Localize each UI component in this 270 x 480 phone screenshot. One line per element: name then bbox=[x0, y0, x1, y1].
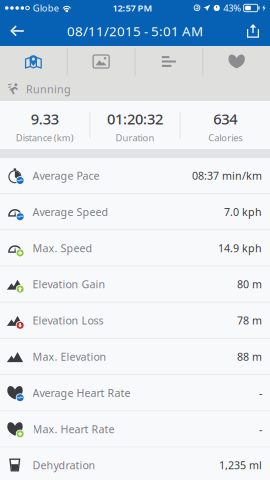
staticText: Average Speed bbox=[32, 205, 108, 219]
button[interactable]: Heart rate bbox=[203, 46, 270, 77]
staticText: Duration bbox=[115, 131, 154, 144]
staticText: 1,235 ml bbox=[219, 458, 262, 472]
staticText: Dehydration bbox=[32, 458, 95, 472]
button[interactable]: Average Heart Rate bbox=[0, 375, 270, 411]
button[interactable]: Back bbox=[0, 16, 34, 46]
button[interactable]: Photos bbox=[68, 46, 135, 77]
staticText: Elevation Loss bbox=[32, 313, 103, 327]
staticText: 08:37 min/km bbox=[192, 168, 262, 183]
staticText: - bbox=[259, 422, 262, 436]
button[interactable]: Max. Speed bbox=[0, 230, 270, 267]
staticText: 14.9 kph bbox=[218, 241, 262, 255]
staticText: 12:57 PM bbox=[112, 2, 152, 14]
staticText: Max. Speed bbox=[32, 241, 92, 255]
button[interactable]: Splits bbox=[135, 46, 202, 77]
button[interactable]: Average Speed bbox=[0, 194, 270, 230]
button[interactable]: Dehydration bbox=[0, 448, 270, 480]
staticText: 78 m bbox=[237, 313, 262, 327]
button[interactable]: Average Pace bbox=[0, 158, 270, 194]
staticText: Average Heart Rate bbox=[32, 386, 130, 400]
staticText: Running bbox=[26, 82, 71, 96]
button[interactable]: Elevation Loss bbox=[0, 303, 270, 339]
staticText: 7.0 kph bbox=[224, 205, 262, 219]
staticText: 634 bbox=[213, 109, 237, 129]
button[interactable]: Share bbox=[236, 16, 270, 46]
staticText: 43% bbox=[223, 2, 241, 14]
button[interactable]: Max. Elevation bbox=[0, 339, 270, 375]
staticText: 08/11/2015 - 5:01 AM bbox=[67, 22, 203, 40]
staticText: Calories bbox=[208, 131, 242, 144]
staticText: Elevation Gain bbox=[32, 277, 105, 291]
staticText: 01:20:32 bbox=[107, 109, 163, 129]
staticText: 80 m bbox=[237, 277, 262, 291]
staticText: Max. Elevation bbox=[32, 349, 106, 364]
staticText: 9.33 bbox=[31, 109, 59, 129]
staticText: Globe bbox=[33, 2, 59, 14]
button[interactable]: Max. Heart Rate bbox=[0, 411, 270, 448]
staticText: Distance (km) bbox=[16, 131, 74, 144]
staticText: Average Pace bbox=[32, 168, 99, 183]
staticText: Max. Heart Rate bbox=[32, 422, 114, 436]
button[interactable]: Map bbox=[0, 46, 67, 77]
button[interactable]: Elevation Gain bbox=[0, 267, 270, 303]
staticText: - bbox=[259, 386, 262, 400]
staticText: 88 m bbox=[237, 349, 262, 364]
